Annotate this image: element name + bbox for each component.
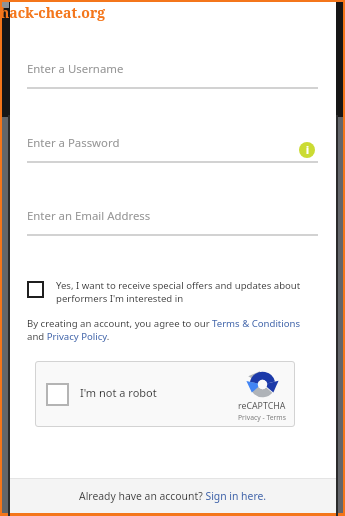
button[interactable]: Enter a Password xyxy=(27,133,318,165)
button[interactable]: Yes, I want to receive special offers an… xyxy=(27,279,314,305)
staticText: reCAPTCHA xyxy=(238,400,286,412)
button[interactable]: Password information xyxy=(299,142,315,158)
staticText: By creating an account, you agree to our… xyxy=(27,317,305,343)
staticText: Enter a Username xyxy=(27,61,124,77)
staticText: i xyxy=(306,143,309,157)
button[interactable]: I'm not a robot checkbox xyxy=(35,361,295,427)
staticText: hack-cheat.org xyxy=(0,3,106,22)
button[interactable]: I'm not a robot checkbox xyxy=(46,383,69,406)
button[interactable]: Enter an Email Address xyxy=(27,206,318,238)
button[interactable]: Enter a Username xyxy=(27,59,318,91)
staticText: Enter an Email Address xyxy=(27,208,151,224)
staticText: Enter a Password xyxy=(27,135,120,151)
staticText: Yes, I want to receive special offers an… xyxy=(56,279,314,305)
staticText: Already have an account? Sign in here. xyxy=(79,489,267,503)
staticText: Privacy - Terms xyxy=(238,413,286,422)
staticText: I'm not a robot xyxy=(80,385,157,400)
